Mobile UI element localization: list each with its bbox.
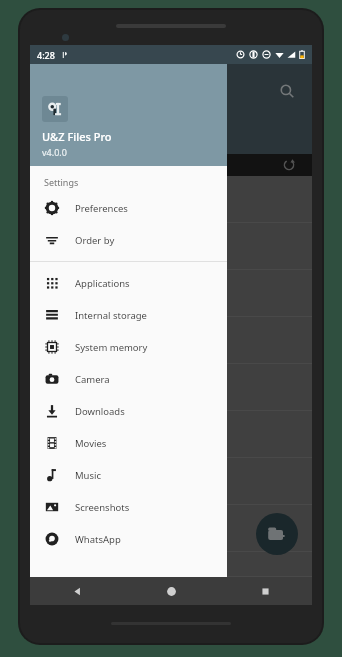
- staticText: Order by: [75, 234, 115, 247]
- button[interactable]: Applications: [30, 267, 227, 299]
- button[interactable]: [30, 364, 312, 411]
- staticText: U&Z Files Pro: [42, 129, 112, 144]
- button[interactable]: [30, 176, 312, 223]
- button[interactable]: [30, 223, 312, 270]
- button[interactable]: Preferences: [30, 192, 227, 224]
- staticText: Movies: [75, 437, 107, 450]
- staticText: Preferences: [75, 202, 128, 215]
- staticText: WhatsApp: [75, 533, 121, 546]
- staticText: Applications: [75, 277, 130, 290]
- staticText: v4.0.0: [42, 146, 67, 158]
- staticText: Music: [75, 469, 102, 482]
- button[interactable]: WhatsApp: [30, 523, 227, 555]
- button[interactable]: New folder: [256, 513, 298, 555]
- staticText: System memory: [75, 341, 148, 354]
- button[interactable]: [30, 458, 312, 505]
- button[interactable]: Order by: [30, 224, 227, 256]
- button[interactable]: [30, 505, 312, 552]
- staticText: Internal storage: [75, 309, 147, 322]
- button[interactable]: [30, 317, 312, 364]
- button[interactable]: Refresh: [280, 156, 298, 174]
- button[interactable]: Downloads: [30, 395, 227, 427]
- button[interactable]: Screenshots: [30, 491, 227, 523]
- staticText: Screenshots: [75, 501, 130, 514]
- button[interactable]: Movies: [30, 427, 227, 459]
- staticText: Downloads: [75, 405, 125, 418]
- staticText: Camera: [75, 373, 110, 386]
- button[interactable]: Recents: [218, 577, 312, 605]
- button[interactable]: [30, 270, 312, 317]
- button[interactable]: [30, 552, 312, 577]
- button[interactable]: Internal storage: [30, 299, 227, 331]
- button[interactable]: System memory: [30, 331, 227, 363]
- button[interactable]: Music: [30, 459, 227, 491]
- button[interactable]: [30, 411, 312, 458]
- staticText: Settings: [44, 176, 79, 188]
- button[interactable]: Home: [124, 577, 218, 605]
- staticText: 4:28: [37, 49, 55, 61]
- button[interactable]: Camera: [30, 363, 227, 395]
- button[interactable]: Back: [30, 577, 124, 605]
- button[interactable]: Search: [276, 80, 298, 102]
- staticText: ZIP FOLDER: [40, 136, 90, 148]
